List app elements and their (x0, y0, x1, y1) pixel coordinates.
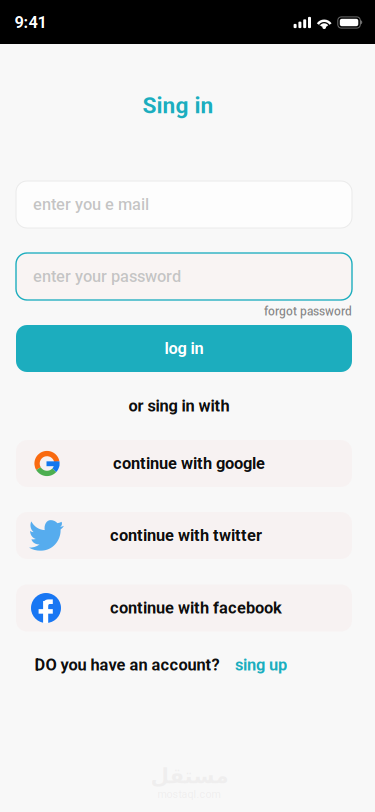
staticText: log in (164, 339, 203, 358)
staticText: sing up (235, 655, 287, 675)
staticText: continue with facebook (110, 598, 282, 618)
button[interactable]: continue with twitter (16, 512, 352, 559)
button[interactable]: log in (16, 325, 352, 372)
staticText: continue with google (113, 454, 265, 473)
button[interactable]: sing up (231, 655, 291, 675)
staticText: enter your password (33, 267, 181, 286)
staticText: enter you e mail (33, 195, 149, 214)
staticText: forgot password (264, 304, 352, 319)
button[interactable]: continue with facebook (16, 584, 352, 631)
button[interactable]: continue with google (16, 440, 352, 487)
staticText: Sing in (142, 92, 213, 119)
button[interactable]: forgot password (252, 302, 352, 320)
staticText: 9:41 (14, 13, 46, 32)
staticText: DO you have an account? (34, 655, 219, 675)
staticText: مستقل (150, 763, 228, 788)
staticText: continue with twitter (110, 526, 262, 545)
staticText: or sing in with (128, 396, 229, 416)
